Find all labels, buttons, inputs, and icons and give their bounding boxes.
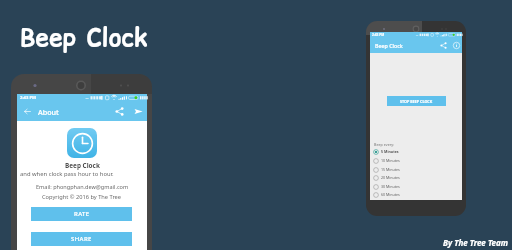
staticText: and when clock pass hour to hour.	[20, 170, 114, 178]
button[interactable]: Back	[17, 102, 38, 121]
staticText: 5 Minutes	[381, 149, 399, 154]
button[interactable]: RATE	[31, 207, 132, 221]
button[interactable]: 5 Minutes	[370, 147, 462, 156]
staticText: 2:43 PM	[372, 33, 385, 37]
button[interactable]: Share	[437, 38, 450, 53]
staticText: Beep Clock	[20, 21, 148, 54]
button[interactable]: Send	[129, 102, 147, 121]
staticText: Email: phongphan.dew@gmail.com	[36, 183, 129, 191]
button[interactable]: Share	[110, 102, 129, 121]
staticText: Beep Clock	[65, 161, 100, 170]
button[interactable]: 20 Minutes	[370, 173, 462, 182]
staticText: 2:43 PM	[20, 95, 37, 101]
staticText: 60 Minutes	[381, 192, 400, 197]
staticText: By The Tree Team	[443, 237, 509, 248]
button[interactable]: 10 Minutes	[370, 156, 462, 165]
staticText: Copyright © 2016 by The Tree	[42, 193, 122, 201]
staticText: 10 Minutes	[381, 158, 400, 163]
staticText: Beep Clock	[375, 42, 403, 49]
button[interactable]: 15 Minutes	[370, 165, 462, 174]
staticText: RATE	[74, 210, 90, 218]
button[interactable]: STOP BEEP CLOCK	[387, 96, 446, 106]
staticText: 15 Minutes	[381, 167, 400, 172]
staticText: STOP BEEP CLOCK	[400, 99, 433, 104]
button[interactable]: 30 Minutes	[370, 182, 462, 191]
staticText: 20 Minutes	[381, 175, 400, 180]
button[interactable]: Info	[450, 38, 462, 53]
staticText: 30 Minutes	[381, 184, 400, 189]
staticText: About	[38, 107, 59, 117]
staticText: SHARE	[71, 235, 92, 243]
button[interactable]: SHARE	[31, 232, 132, 246]
button[interactable]: 60 Minutes	[370, 190, 462, 199]
staticText: Beep every:	[374, 142, 395, 147]
